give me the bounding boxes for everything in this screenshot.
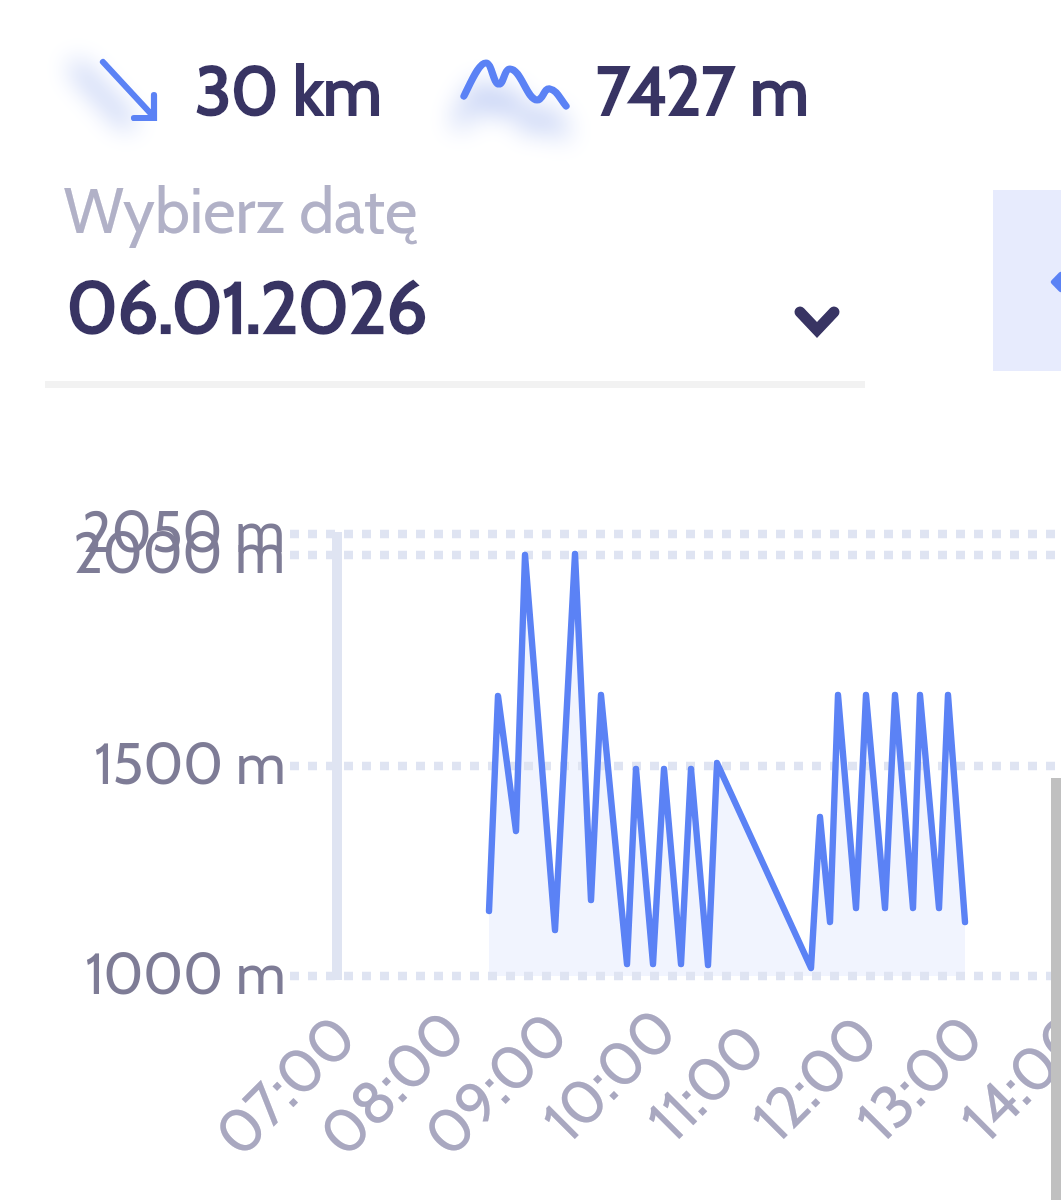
button[interactable]: Elevation profile chart (0, 0, 1061, 1200)
